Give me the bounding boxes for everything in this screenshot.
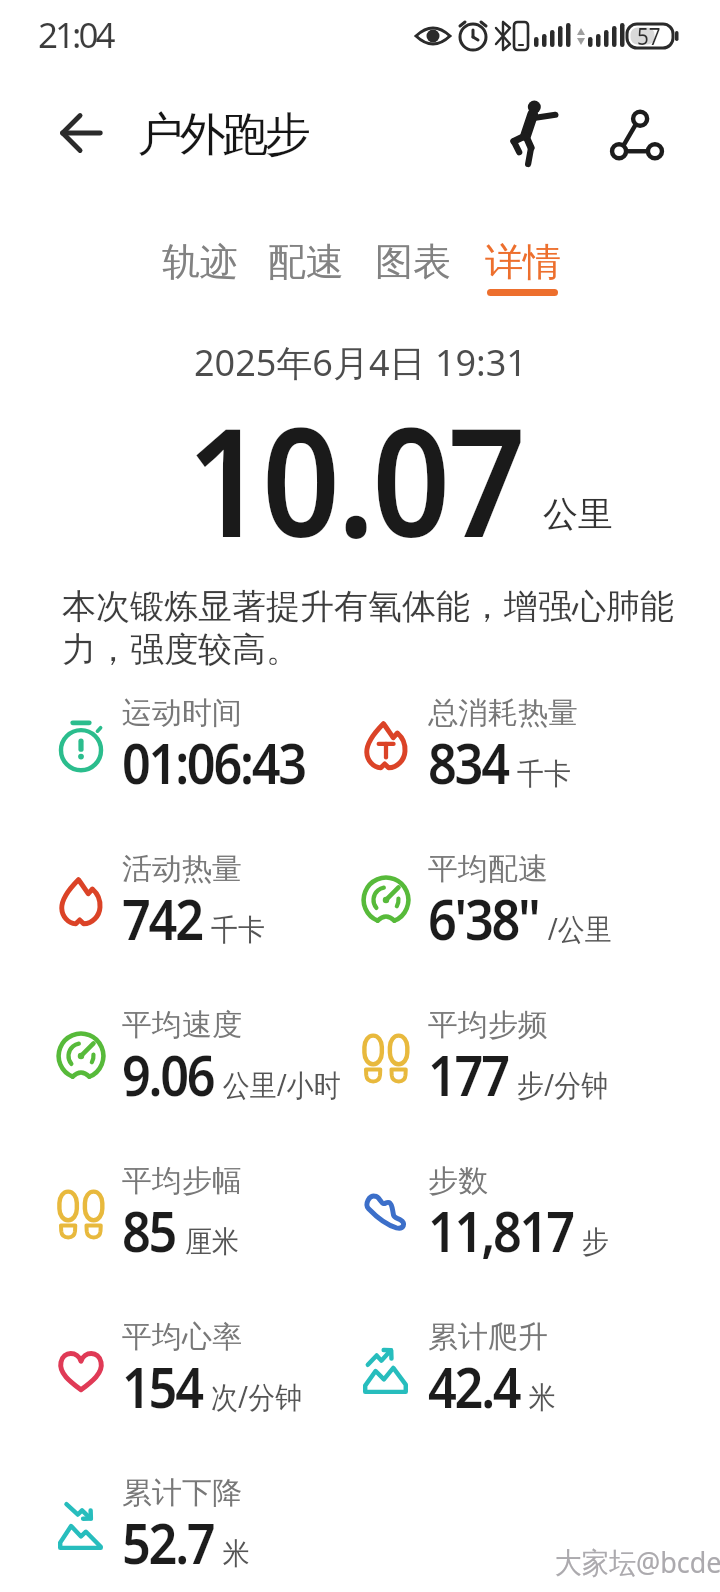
staticText: 步 <box>582 1223 609 1261</box>
staticText: 公里 <box>543 492 613 536</box>
staticText: 52.7 <box>122 1504 214 1580</box>
staticText: 834 <box>428 724 508 800</box>
staticText: 千卡 <box>517 755 571 793</box>
staticText: 6'38" <box>428 880 539 956</box>
button[interactable]: 轨迹 <box>160 234 240 290</box>
button[interactable]: 配速 <box>266 234 346 290</box>
staticText: 步/分钟 <box>517 1064 609 1105</box>
staticText: 千卡 <box>211 911 265 949</box>
staticText: /公里 <box>548 908 612 949</box>
staticText: 户外跑步 <box>139 106 309 164</box>
staticText: 本次锻炼显著提升有氧体能，增强心肺能 力，强度较高。 <box>62 585 674 671</box>
staticText: 米 <box>529 1379 556 1417</box>
staticText: 平均步频 <box>428 1006 548 1044</box>
staticText: 平均速度 <box>122 1006 242 1044</box>
staticText: 742 <box>122 880 202 956</box>
staticText: 米 <box>223 1535 250 1573</box>
staticText: 活动热量 <box>122 850 242 888</box>
staticText: 详情 <box>485 238 561 286</box>
button[interactable]: 图表 <box>373 234 453 290</box>
button[interactable]: 详情 <box>483 234 563 290</box>
staticText: 21:04 <box>38 11 113 59</box>
staticText: 步数 <box>428 1162 488 1200</box>
staticText: 9.06 <box>122 1036 214 1112</box>
staticText: 154 <box>122 1348 202 1424</box>
staticText: 次/分钟 <box>211 1376 303 1417</box>
staticText: 57 <box>637 20 661 51</box>
staticText: 运动时间 <box>122 694 242 732</box>
staticText: 图表 <box>375 238 451 286</box>
staticText: 42.4 <box>428 1348 520 1424</box>
staticText: 85 <box>122 1192 176 1268</box>
staticText: 总消耗热量 <box>428 694 578 732</box>
staticText: 配速 <box>268 238 344 286</box>
staticText: 公里/小时 <box>223 1064 342 1105</box>
staticText: 01:06:43 <box>122 724 306 800</box>
staticText: 177 <box>428 1036 508 1112</box>
staticText: 大家坛@bcde <box>555 1542 720 1582</box>
staticText: 轨迹 <box>162 238 238 286</box>
staticText: 累计爬升 <box>428 1318 548 1356</box>
staticText: 2025年6月4日 19:31 <box>194 338 527 387</box>
staticText: 厘米 <box>185 1223 239 1261</box>
staticText: 平均步幅 <box>122 1162 242 1200</box>
staticText: 平均心率 <box>122 1318 242 1356</box>
button[interactable] <box>495 98 565 168</box>
button[interactable] <box>604 104 670 166</box>
staticText: 平均配速 <box>428 850 548 888</box>
button[interactable] <box>50 105 112 161</box>
staticText: 11,817 <box>428 1192 573 1268</box>
staticText: 累计下降 <box>122 1474 242 1512</box>
staticText: 10.07 <box>187 377 523 581</box>
